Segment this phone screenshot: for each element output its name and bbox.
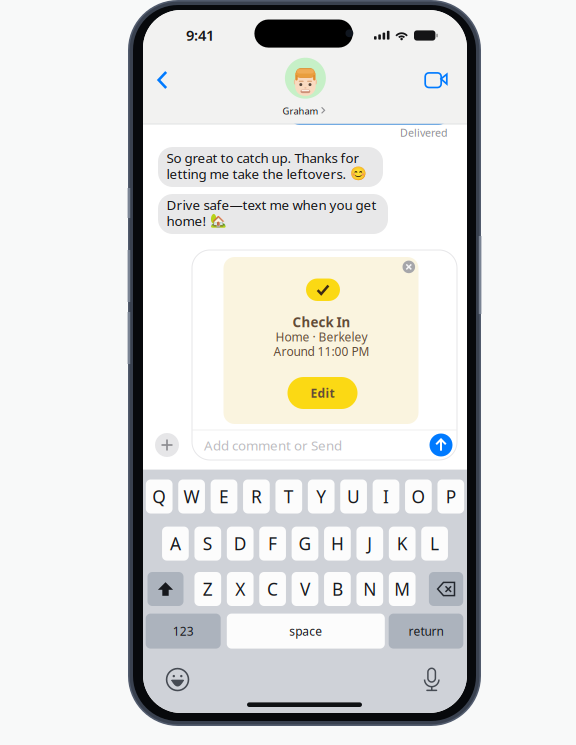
staticText: N (363, 577, 376, 600)
staticText: O (411, 485, 425, 508)
staticText: Drive safe—text me when you get (166, 196, 376, 214)
staticText: K (397, 532, 408, 555)
button[interactable]: FaceTime (425, 73, 447, 87)
button[interactable]: return (389, 614, 463, 649)
staticText: X (235, 577, 245, 600)
button[interactable]: T (275, 479, 302, 513)
staticText: Add comment or Send (204, 436, 342, 454)
staticText: return (408, 623, 443, 639)
button[interactable]: B (324, 572, 351, 606)
button[interactable]: H (324, 527, 351, 561)
button[interactable]: L (421, 527, 448, 561)
staticText: B (332, 577, 343, 600)
button[interactable]: Delete (429, 572, 463, 606)
button[interactable]: K (389, 527, 416, 561)
staticText: 🏡 (209, 213, 226, 228)
staticText: F (268, 532, 277, 555)
button[interactable]: Y (308, 479, 335, 513)
button[interactable]: Emoji keyboard (167, 669, 188, 690)
staticText: Y (316, 485, 326, 508)
button[interactable]: C (259, 572, 286, 606)
staticText: Z (203, 577, 213, 600)
staticText: I (383, 485, 389, 508)
staticText: So great to catch up. Thanks for (166, 149, 359, 167)
button[interactable]: G (292, 527, 318, 561)
button[interactable]: J (356, 527, 383, 561)
staticText: 9:41 (186, 25, 214, 45)
button[interactable]: Shift (147, 572, 183, 606)
staticText: M (394, 577, 410, 600)
button[interactable]: X (227, 572, 254, 606)
staticText: P (446, 485, 456, 508)
staticText: Home · Berkeley (275, 329, 367, 345)
staticText: space (289, 623, 322, 639)
button[interactable]: E (211, 479, 237, 513)
staticText: D (234, 532, 247, 555)
button[interactable]: R (243, 479, 270, 513)
button[interactable]: N (356, 572, 383, 606)
staticText: T (284, 485, 294, 508)
button[interactable]: F (259, 527, 286, 561)
button[interactable]: Remove Check In (402, 261, 415, 273)
staticText: Check In (292, 313, 350, 331)
button[interactable]: P (437, 479, 464, 513)
button[interactable]: 123 (146, 614, 221, 649)
button[interactable]: D (227, 527, 254, 561)
staticText: Around 11:00 PM (273, 343, 369, 359)
staticText: Q (152, 485, 166, 508)
staticText: H (331, 532, 344, 555)
staticText: R (251, 485, 262, 508)
staticText: V (300, 577, 310, 600)
button[interactable]: A (162, 527, 189, 561)
staticText: letting me take the leftovers. (166, 165, 346, 183)
staticText: C (267, 577, 278, 600)
staticText: W (184, 485, 200, 508)
staticText: L (430, 532, 439, 555)
button[interactable]: O (405, 479, 432, 513)
button[interactable]: U (340, 479, 367, 513)
staticText: Edit (310, 385, 334, 401)
button[interactable]: space (227, 614, 385, 649)
staticText: home! (166, 212, 206, 230)
button[interactable]: I (373, 479, 399, 513)
button[interactable]: Add comment or Send (0, 0, 576, 745)
button[interactable]: S (194, 527, 221, 561)
button[interactable]: Q (146, 479, 173, 513)
button[interactable]: Send (429, 433, 452, 456)
staticText: E (219, 485, 229, 508)
button[interactable]: V (292, 572, 318, 606)
button[interactable]: Z (194, 572, 221, 606)
button[interactable]: Back (150, 68, 174, 92)
staticText: Graham (283, 105, 319, 117)
button[interactable]: Dictation (424, 668, 439, 691)
staticText: S (203, 532, 213, 555)
staticText: J (367, 532, 372, 555)
staticText: A (170, 532, 181, 555)
staticText: U (347, 485, 360, 508)
staticText: 123 (173, 623, 194, 639)
staticText: Delivered (400, 125, 448, 140)
staticText: 😊 (349, 166, 366, 181)
button[interactable]: W (178, 479, 205, 513)
button[interactable]: M (389, 572, 416, 606)
button[interactable]: Graham (0, 0, 576, 745)
button[interactable]: Add attachment (155, 433, 179, 457)
staticText: G (298, 532, 311, 555)
button[interactable]: Edit (287, 377, 357, 409)
